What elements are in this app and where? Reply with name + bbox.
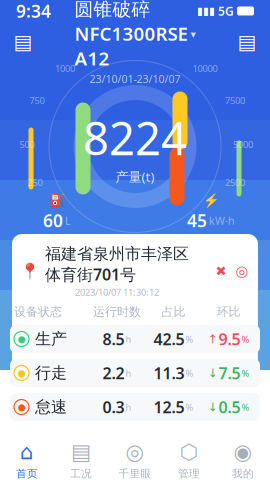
staticText: 1000	[55, 62, 75, 75]
staticText: ↓	[207, 400, 217, 414]
staticText: 0.5	[218, 396, 240, 418]
staticText: 管理	[178, 467, 200, 480]
staticText: 2500	[225, 176, 245, 189]
button[interactable]: List	[236, 31, 258, 53]
staticText: %	[185, 333, 193, 345]
staticText: ↑	[207, 332, 217, 346]
staticText: 5G	[218, 3, 234, 19]
staticText: 23/10/01-23/10/07	[89, 72, 180, 86]
staticText: ⛽	[48, 193, 65, 208]
staticText: h	[125, 401, 131, 413]
staticText: 生产	[35, 329, 67, 349]
staticText: 45	[187, 209, 207, 232]
staticText: ↓	[207, 366, 217, 380]
staticText: ⚡	[202, 193, 219, 208]
staticText: ◉	[233, 440, 252, 464]
button[interactable]: ●	[10, 393, 260, 421]
staticText: 60	[43, 209, 63, 232]
staticText: 首页	[16, 467, 38, 480]
staticText: %	[241, 333, 249, 345]
staticText: 9.5	[218, 328, 240, 350]
button[interactable]: ◉	[216, 439, 270, 480]
button[interactable]: ▤	[54, 439, 108, 480]
staticText: ◎	[235, 263, 248, 279]
staticText: ●	[17, 368, 25, 378]
staticText: 9:34	[16, 0, 51, 22]
staticText: 工况	[70, 467, 92, 480]
staticText: 11.3	[153, 362, 184, 384]
staticText: 千里眼	[118, 467, 151, 480]
staticText: ⌂	[20, 440, 34, 464]
staticText: ▾	[190, 28, 195, 40]
button[interactable]: ◎	[108, 439, 162, 480]
staticText: %	[241, 401, 249, 413]
staticText: 设备状态	[14, 304, 62, 319]
button[interactable]: ●	[10, 325, 260, 353]
button[interactable]: History	[234, 263, 250, 279]
staticText: 运行时数	[93, 304, 141, 319]
button[interactable]: Navigate	[213, 263, 229, 279]
staticText: 5000	[233, 138, 253, 151]
staticText: ●	[17, 334, 25, 344]
staticText: 0.3	[102, 396, 124, 418]
staticText: 2023/10/07 11:30:12	[75, 286, 159, 298]
staticText: %	[185, 401, 193, 413]
staticText: 7.5	[218, 362, 240, 384]
staticText: %	[185, 367, 193, 379]
staticText: ◎	[125, 440, 144, 464]
button[interactable]: Calendar	[12, 31, 34, 53]
staticText: ●	[17, 402, 25, 412]
staticText: ⬡	[179, 440, 198, 464]
staticText: 500	[19, 138, 34, 151]
staticText: 7500	[225, 94, 245, 107]
staticText: ▮▮▮	[197, 5, 215, 17]
staticText: ▤	[237, 31, 256, 53]
staticText: 750	[29, 94, 44, 107]
staticText: 占比	[161, 304, 185, 319]
staticText: kW·h	[209, 213, 235, 228]
staticText: 行走	[35, 363, 67, 383]
staticText: 8.5	[102, 328, 124, 350]
staticText: 环比	[216, 304, 240, 319]
staticText: 产量(t)	[115, 168, 154, 185]
staticText: h	[125, 333, 131, 345]
button[interactable]: ⌂	[0, 439, 54, 480]
staticText: ▤	[71, 440, 91, 464]
staticText: ✖	[215, 264, 226, 279]
staticText: 📍	[20, 262, 40, 280]
staticText: 10000	[192, 62, 217, 75]
staticText: ▤	[13, 31, 32, 53]
staticText: 8224	[83, 107, 187, 168]
button[interactable]: ●	[10, 359, 260, 387]
staticText: 250	[27, 176, 42, 189]
button[interactable]: ⬡	[162, 439, 216, 480]
staticText: 怠速	[35, 397, 67, 417]
staticText: 福建省泉州市丰泽区体育街701号	[45, 244, 189, 285]
staticText: h	[125, 367, 131, 379]
staticText: %	[241, 367, 249, 379]
staticText: 42.5	[153, 328, 184, 350]
staticText: L	[65, 213, 71, 228]
staticText: 圆锥破碎 NFC1300RSE A12	[74, 0, 187, 71]
staticText: 我的	[232, 467, 254, 480]
staticText: 12.5	[153, 396, 184, 418]
staticText: 2.2	[102, 362, 124, 384]
